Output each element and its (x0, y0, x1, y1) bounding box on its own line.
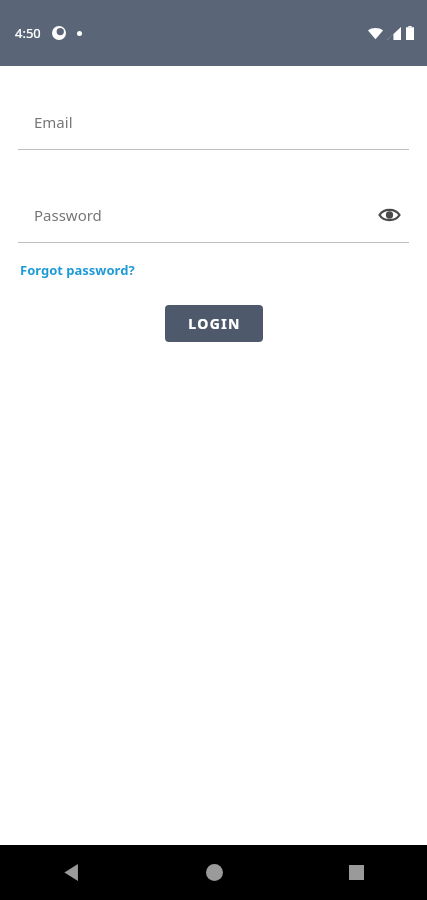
staticText: Email (34, 112, 73, 132)
button[interactable]: Show password (369, 195, 409, 235)
staticText: LOGIN (188, 314, 241, 333)
staticText: Forgot password? (20, 261, 135, 279)
button[interactable]: Password (18, 188, 409, 242)
button[interactable]: Forgot password? (18, 259, 137, 281)
button[interactable]: Home (143, 845, 285, 900)
button[interactable]: Back (0, 845, 143, 900)
staticText: Password (34, 205, 102, 225)
button[interactable]: Recent apps (285, 845, 427, 900)
button[interactable]: Email (18, 95, 409, 149)
staticText: 4:50 (15, 24, 41, 42)
button[interactable]: LOGIN (165, 305, 263, 342)
